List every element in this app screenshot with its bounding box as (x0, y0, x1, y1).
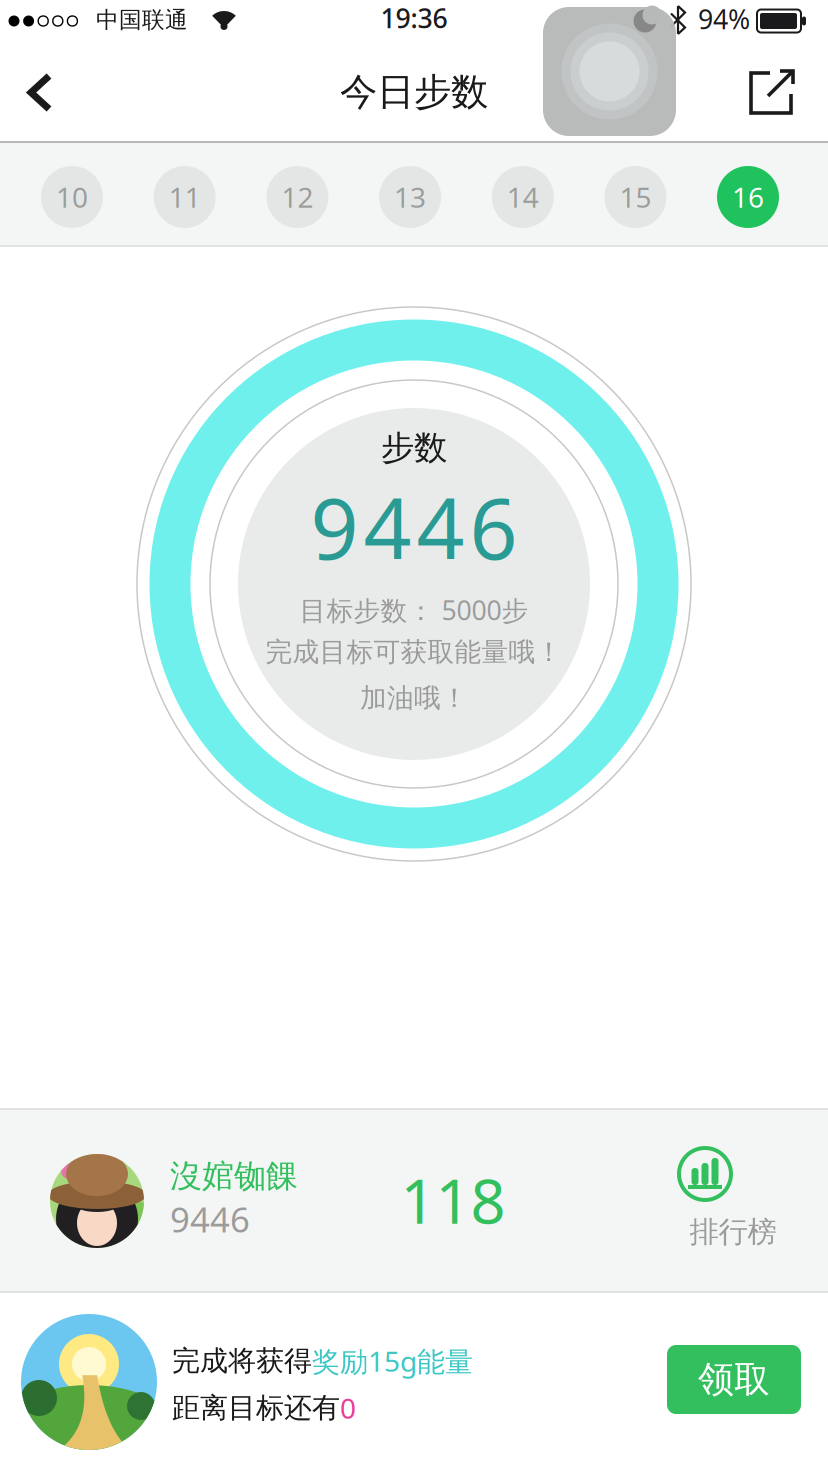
button[interactable]: 领取 (667, 1345, 801, 1414)
button[interactable] (741, 63, 801, 123)
button[interactable]: 排行榜 (640, 1138, 770, 1268)
button[interactable]: 12 (266, 166, 328, 228)
staticText: 15 (619, 178, 651, 216)
staticText: 排行榜 (689, 1214, 776, 1250)
button[interactable]: 13 (379, 166, 441, 228)
staticText: 94% (698, 1, 750, 37)
staticText: 目标步数： 5000步 (299, 592, 528, 628)
button[interactable]: 10 (41, 166, 103, 228)
button[interactable]: 16 (717, 166, 779, 228)
staticText: 领取 (698, 1357, 770, 1402)
staticText: 沒婠铷餜 (170, 1156, 298, 1196)
staticText: 12 (281, 178, 313, 216)
staticText: 11 (169, 178, 201, 216)
staticText: 0 (340, 1389, 356, 1427)
staticText: 19:36 (380, 0, 447, 36)
staticText: 奖励15g能量 (312, 1342, 473, 1380)
staticText: 完成目标可获取能量哦！ (265, 636, 562, 668)
button[interactable]: 11 (154, 166, 216, 228)
staticText: 今日步数 (340, 69, 488, 115)
staticText: 中国联通 (96, 6, 188, 34)
staticText: 16 (732, 178, 764, 216)
staticText: 118 (400, 1159, 505, 1241)
staticText: 9446 (310, 471, 517, 583)
staticText: 13 (394, 178, 426, 216)
staticText: 加油哦！ (360, 682, 468, 714)
staticText: 距离目标还有 (172, 1391, 340, 1425)
button[interactable] (543, 7, 676, 136)
staticText: 9446 (170, 1196, 250, 1242)
staticText: 完成将获得 (172, 1344, 312, 1378)
button[interactable]: 15 (604, 166, 666, 228)
staticText: 步数 (381, 427, 447, 468)
staticText: 10 (56, 178, 88, 216)
staticText: 14 (507, 178, 539, 216)
button[interactable]: 14 (492, 166, 554, 228)
button[interactable] (18, 67, 74, 127)
